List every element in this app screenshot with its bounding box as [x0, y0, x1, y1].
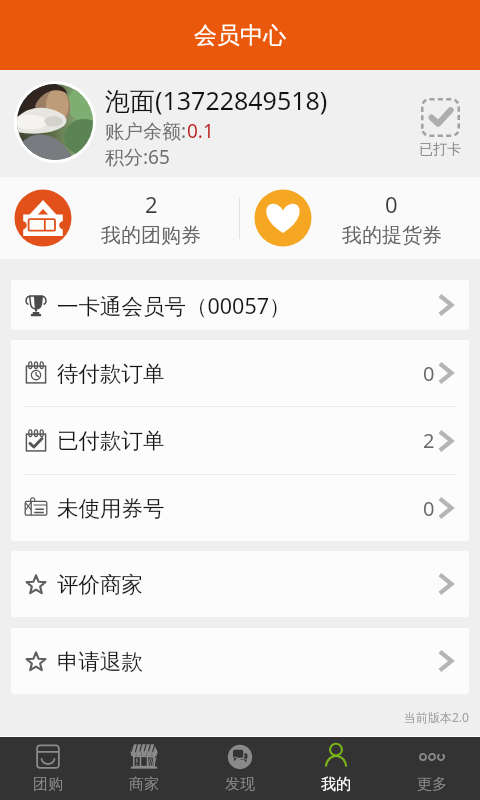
button[interactable]: 商家	[96, 737, 192, 800]
staticText: 2	[423, 427, 435, 454]
staticText: 一卡通会员号（00057）	[57, 291, 291, 320]
staticText: 发现	[225, 775, 255, 794]
button[interactable]: 已打卡	[411, 92, 469, 165]
staticText: 0	[423, 360, 435, 387]
staticText: 我的	[321, 775, 351, 794]
staticText: 评价商家	[57, 571, 143, 598]
staticText: 我的团购券	[101, 223, 201, 248]
staticText: 商家	[129, 775, 159, 794]
staticText: 积分:65	[105, 144, 170, 170]
staticText: 待付款订单	[57, 360, 165, 387]
staticText: 团购	[33, 775, 63, 794]
staticText: 未使用券号	[57, 495, 165, 522]
staticText: 我的提货券	[342, 223, 442, 248]
staticText: 更多	[417, 775, 447, 794]
staticText: 0	[423, 495, 435, 522]
staticText: 账户余额:	[105, 118, 187, 144]
staticText: 泡面(13722849518)	[105, 83, 328, 117]
button[interactable]: 已付款订单	[11, 407, 469, 474]
button[interactable]: 0	[240, 177, 480, 259]
button[interactable]: 发现	[192, 737, 288, 800]
staticText: 0.1	[187, 118, 214, 144]
button[interactable]: 评价商家	[11, 551, 469, 617]
staticText: 会员中心	[194, 21, 286, 50]
staticText: 当前版本2.0	[404, 709, 469, 725]
button[interactable]: 更多	[384, 737, 480, 800]
button[interactable]: 团购	[0, 737, 96, 800]
button[interactable]: 申请退款	[11, 628, 469, 694]
button[interactable]: 2	[0, 177, 239, 259]
button[interactable]: 我的	[288, 737, 384, 800]
staticText: 申请退款	[57, 648, 143, 675]
button[interactable]: 待付款订单	[11, 340, 469, 406]
staticText: 已打卡	[419, 141, 461, 159]
staticText: 已付款订单	[57, 427, 165, 454]
button[interactable]: 一卡通会员号（00057）	[11, 280, 469, 330]
staticText: 0	[385, 189, 398, 219]
staticText: 2	[145, 189, 158, 219]
button[interactable]: 未使用券号	[11, 475, 469, 541]
